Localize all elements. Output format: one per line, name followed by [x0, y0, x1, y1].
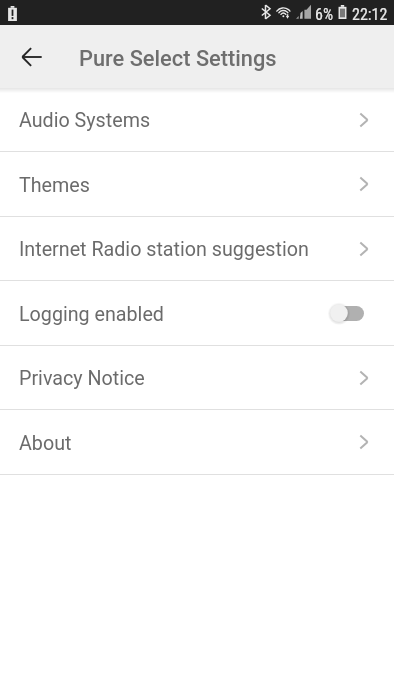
- button[interactable]: Privacy Notice: [0, 346, 394, 409]
- staticText: Audio Systems: [19, 109, 151, 132]
- button[interactable]: Logging enabled toggle: [328, 302, 364, 324]
- staticText: About: [19, 432, 72, 455]
- staticText: 6%: [315, 5, 334, 24]
- button[interactable]: Themes: [0, 152, 394, 216]
- staticText: Logging enabled: [19, 303, 164, 326]
- button[interactable]: Back: [11, 36, 53, 78]
- staticText: Pure Select Settings: [79, 46, 277, 72]
- button[interactable]: About: [0, 410, 394, 474]
- staticText: Themes: [19, 174, 90, 197]
- button[interactable]: Internet Radio station suggestion: [0, 217, 394, 280]
- button[interactable]: Logging enabled: [0, 281, 394, 345]
- staticText: Internet Radio station suggestion: [19, 238, 309, 261]
- staticText: Privacy Notice: [19, 367, 145, 390]
- staticText: 22:12: [352, 5, 388, 24]
- button[interactable]: Audio Systems: [0, 88, 394, 151]
